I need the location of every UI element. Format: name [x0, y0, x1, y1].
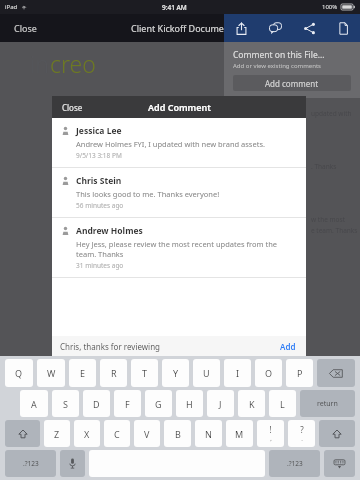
- button[interactable]: L: [269, 390, 296, 417]
- staticText: .?123: [287, 459, 303, 468]
- button[interactable]: Key: [60, 450, 85, 477]
- staticText: e team. Thanks: [311, 226, 358, 235]
- button[interactable]: C: [104, 420, 130, 447]
- staticText: Q: [15, 367, 23, 379]
- staticText: Add or view existing comments: [233, 62, 321, 70]
- staticText: K: [249, 398, 255, 410]
- button[interactable]: F: [114, 390, 141, 417]
- staticText: ?: [300, 424, 304, 435]
- staticText: T: [142, 367, 148, 379]
- staticText: ,: [270, 435, 272, 443]
- button[interactable]: R: [100, 359, 127, 387]
- staticText: iPad: [5, 3, 18, 11]
- button[interactable]: Key: [300, 390, 355, 417]
- button[interactable]: Close: [0, 16, 51, 40]
- staticText: Y: [173, 367, 179, 379]
- button[interactable]: N: [195, 420, 222, 447]
- button[interactable]: Share: [292, 14, 326, 42]
- button[interactable]: !: [257, 420, 284, 447]
- button[interactable]: Chris Stein: [52, 168, 306, 218]
- staticText: 9/5/13 3:18 PM: [76, 151, 122, 160]
- button[interactable]: J: [207, 390, 234, 417]
- button[interactable]: ?: [288, 420, 315, 447]
- button[interactable]: M: [226, 420, 253, 447]
- button[interactable]: Add comment: [233, 75, 351, 91]
- staticText: D: [93, 398, 100, 410]
- staticText: U: [203, 367, 210, 379]
- button[interactable]: I: [224, 359, 251, 387]
- button[interactable]: P: [286, 359, 313, 387]
- staticText: I: [236, 367, 240, 379]
- staticText: Close: [14, 22, 37, 34]
- button[interactable]: A: [20, 390, 48, 417]
- button[interactable]: Z: [44, 420, 70, 447]
- button[interactable]: Close: [52, 98, 93, 117]
- button[interactable]: Q: [5, 359, 33, 387]
- button[interactable]: Comments: [258, 14, 292, 42]
- button[interactable]: Document: [326, 14, 360, 42]
- button[interactable]: Add: [278, 338, 298, 355]
- button[interactable]: Andrew Holmes: [52, 218, 306, 278]
- staticText: creo: [50, 48, 96, 79]
- staticText: F: [125, 398, 130, 410]
- button[interactable]: E: [69, 359, 96, 387]
- staticText: Close: [62, 102, 83, 113]
- staticText: !: [269, 424, 272, 435]
- staticText: V: [144, 428, 150, 440]
- button[interactable]: D: [83, 390, 110, 417]
- button[interactable]: Y: [162, 359, 189, 387]
- staticText: C: [114, 428, 120, 440]
- staticText: 9:41 AM: [162, 3, 187, 12]
- button[interactable]: T: [131, 359, 158, 387]
- button[interactable]: G: [145, 390, 172, 417]
- staticText: R: [111, 367, 117, 379]
- button[interactable]: K: [238, 390, 265, 417]
- button[interactable]: Key: [5, 450, 56, 477]
- button[interactable]: O: [255, 359, 282, 387]
- staticText: X: [84, 428, 90, 440]
- staticText: Client Kickoff Document: [131, 22, 233, 34]
- button[interactable]: H: [176, 390, 203, 417]
- staticText: E: [80, 367, 86, 379]
- staticText: Jessica Lee: [76, 125, 122, 137]
- staticText: Comment on this File…: [233, 49, 325, 61]
- staticText: Add: [280, 341, 296, 352]
- staticText: J: [219, 398, 222, 410]
- staticText: 31 minutes ago: [76, 261, 124, 270]
- staticText: This looks good to me. Thanks everyone!: [76, 189, 220, 199]
- staticText: Chris Stein: [76, 175, 122, 187]
- button[interactable]: Jessica Lee: [52, 118, 306, 168]
- button[interactable]: B: [164, 420, 191, 447]
- button[interactable]: Key: [317, 359, 355, 387]
- staticText: M: [235, 428, 244, 440]
- staticText: L: [280, 398, 285, 410]
- staticText: Andrew Holmes FYI, I updated with new br…: [76, 139, 266, 149]
- staticText: 56 minutes ago: [76, 201, 124, 210]
- staticText: N: [205, 428, 212, 440]
- staticText: B: [175, 428, 181, 440]
- button[interactable]: Key: [269, 450, 320, 477]
- staticText: 100%: [322, 3, 338, 11]
- button[interactable]: Key: [319, 420, 355, 447]
- staticText: G: [155, 398, 162, 410]
- staticText: w the most: [311, 215, 345, 224]
- button[interactable]: U: [193, 359, 220, 387]
- button[interactable]: W: [37, 359, 65, 387]
- button[interactable]: X: [74, 420, 100, 447]
- staticText: H: [186, 398, 193, 410]
- staticText: Add comment: [265, 78, 319, 89]
- staticText: O: [265, 367, 273, 379]
- staticText: Add Comment: [148, 101, 211, 113]
- button[interactable]: Key: [5, 420, 40, 447]
- staticText: Chris, thanks for reviewing: [60, 341, 278, 352]
- button[interactable]: S: [52, 390, 79, 417]
- button[interactable]: V: [134, 420, 160, 447]
- staticText: Andrew Holmes: [76, 225, 143, 237]
- staticText: .: [301, 435, 303, 443]
- staticText: .?123: [23, 459, 39, 468]
- staticText: A: [31, 398, 37, 410]
- button[interactable]: Key: [324, 450, 355, 477]
- button[interactable]: Share file: [224, 14, 258, 42]
